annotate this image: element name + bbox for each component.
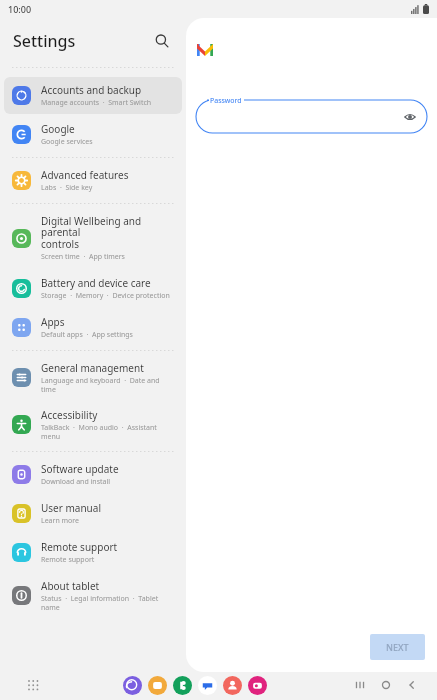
staticText: Password: [210, 96, 242, 106]
button[interactable]: Home: [373, 672, 399, 698]
button[interactable]: General management: [4, 355, 182, 400]
button[interactable]: User manual: [4, 495, 182, 532]
button[interactable]: About tablet: [4, 573, 182, 618]
button[interactable]: Contacts: [223, 676, 242, 695]
button[interactable]: Show password: [401, 108, 419, 126]
button[interactable]: Camera: [248, 676, 267, 695]
button[interactable]: Accounts and backup: [4, 77, 182, 114]
staticText: Status · Legal information · Tablet name: [41, 594, 159, 612]
button[interactable]: Search: [150, 29, 174, 53]
button[interactable]: Recents: [347, 672, 373, 698]
staticText: Apps: [41, 315, 65, 329]
staticText: Digital Wellbeing and parental controls: [41, 214, 174, 251]
staticText: Settings: [13, 30, 76, 52]
staticText: General management: [41, 361, 144, 375]
staticText: Labs · Side key: [41, 183, 93, 193]
button[interactable]: Software update: [4, 456, 182, 493]
button[interactable]: Google: [4, 116, 182, 153]
button[interactable]: Remote support: [4, 534, 182, 571]
staticText: Remote support: [41, 540, 118, 554]
button[interactable]: Messages: [198, 676, 217, 695]
button[interactable]: Phone: [173, 676, 192, 695]
button[interactable]: Accessibility: [4, 402, 182, 447]
staticText: Download and install: [41, 477, 111, 487]
staticText: Storage · Memory · Device protection: [41, 291, 170, 301]
staticText: Manage accounts · Smart Switch: [41, 98, 152, 108]
staticText: NEXT: [386, 641, 409, 653]
button[interactable]: Back: [399, 672, 425, 698]
staticText: Screen time · App timers: [41, 252, 125, 262]
staticText: Google: [41, 122, 75, 136]
staticText: Battery and device care: [41, 276, 151, 290]
staticText: Software update: [41, 462, 119, 476]
staticText: Advanced features: [41, 168, 129, 182]
staticText: Learn more: [41, 516, 80, 526]
staticText: TalkBack · Mono audio · Assistant menu: [41, 423, 157, 441]
button[interactable]: Apps: [22, 674, 44, 696]
staticText: Language and keyboard · Date and time: [41, 376, 160, 394]
staticText: Accounts and backup: [41, 83, 142, 97]
button[interactable]: Apps: [4, 309, 182, 346]
staticText: Default apps · App settings: [41, 330, 133, 340]
button[interactable]: NEXT: [370, 634, 425, 660]
staticText: User manual: [41, 501, 101, 515]
button[interactable]: Samsung Internet: [123, 676, 142, 695]
staticText: Remote support: [41, 555, 95, 565]
button[interactable]: Advanced features: [4, 162, 182, 199]
staticText: Google services: [41, 137, 93, 147]
staticText: Accessibility: [41, 408, 98, 422]
button[interactable]: Digital Wellbeing and parental controls: [4, 208, 182, 268]
staticText: About tablet: [41, 579, 100, 593]
staticText: 10:00: [8, 3, 32, 15]
button[interactable]: My Files: [148, 676, 167, 695]
button[interactable]: Battery and device care: [4, 270, 182, 307]
